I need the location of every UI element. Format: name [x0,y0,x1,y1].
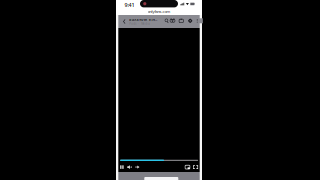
button[interactable]: More [196,18,198,23]
staticText: ALEXANDER BIN… [129,18,157,21]
button[interactable]: Settings [188,18,192,23]
button[interactable]: Discover [170,18,175,23]
staticText: onlyfans.com [147,9,170,14]
button[interactable]: Full screen [193,165,198,170]
button[interactable]: Share [179,18,183,23]
button[interactable]: Picture in picture [185,165,190,170]
staticText: Posts · Media [129,22,149,25]
button[interactable]: Back [121,15,127,28]
staticText: 9:41 [125,1,135,8]
button[interactable]: Pause [120,165,124,170]
button[interactable]: onlyfans.com [137,8,181,14]
button[interactable]: Mute [127,165,132,170]
button[interactable]: Search [165,18,169,23]
